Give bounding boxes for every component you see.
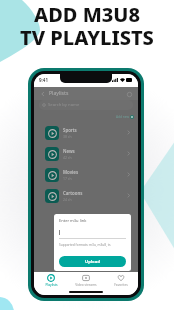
staticText: Sports (63, 127, 77, 133)
staticText: TV PLAYLISTS (20, 24, 154, 51)
button[interactable]: Upload (59, 256, 126, 267)
button[interactable]: Add new (116, 115, 134, 119)
staticText: Favorites (114, 283, 128, 287)
button[interactable]: Playlists (34, 274, 68, 287)
staticText: Enter m3u link (59, 218, 87, 223)
button[interactable]: Help (125, 90, 133, 98)
staticText: Cartoons (63, 190, 83, 196)
button[interactable]: News (45, 143, 131, 164)
staticText: News (63, 148, 75, 154)
staticText: 17 ch (63, 176, 72, 181)
button[interactable]: Back (39, 90, 47, 98)
staticText: Supported formats: m3u, m3u8, ts (59, 243, 111, 247)
button[interactable]: Movies (45, 164, 131, 185)
button[interactable]: Search by name (39, 100, 133, 110)
button[interactable]: Video streams (68, 274, 103, 287)
staticText: 42 ch (63, 155, 72, 160)
staticText: Add new (116, 115, 129, 119)
button[interactable]: Cartoons (45, 185, 131, 206)
staticText: 9:41 (39, 77, 48, 83)
staticText: Playlists (45, 283, 58, 287)
staticText: Movies (63, 169, 79, 175)
staticText: Upload (85, 259, 100, 265)
staticText: 24 ch (63, 197, 72, 202)
button[interactable]: Favorites (103, 274, 138, 287)
staticText: 38 ch (63, 134, 72, 139)
staticText: Video streams (75, 283, 97, 287)
staticText: Playlists (49, 90, 69, 97)
staticText: ADD M3U8 (34, 1, 140, 28)
staticText: Search by name (48, 102, 80, 108)
button[interactable]: Sports (45, 122, 131, 143)
